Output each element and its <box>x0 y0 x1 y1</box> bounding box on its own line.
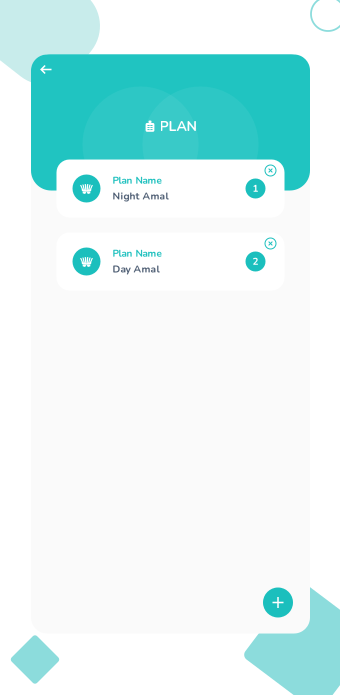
button[interactable]: Remove plan <box>260 160 280 180</box>
staticText: 2 <box>252 255 258 268</box>
staticText: Day Amal <box>112 262 159 276</box>
staticText: 1 <box>252 182 258 195</box>
staticText: Night Amal <box>112 189 168 203</box>
button[interactable]: Plan Name <box>56 159 284 217</box>
button[interactable]: Remove plan <box>260 233 280 253</box>
button[interactable]: Add plan <box>263 587 293 617</box>
button[interactable]: Back <box>34 58 58 80</box>
staticText: PLAN <box>159 117 196 136</box>
button[interactable]: Plan Name <box>56 232 284 290</box>
staticText: Plan Name <box>112 174 161 187</box>
staticText: Plan Name <box>112 247 161 260</box>
